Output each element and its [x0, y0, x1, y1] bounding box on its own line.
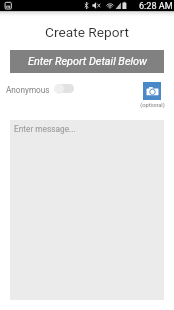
button[interactable]: Enter Report Detail Below [10, 50, 164, 73]
staticText: 6:28 AM [139, 1, 173, 12]
staticText: Anonymous [6, 85, 50, 95]
button[interactable]: Attach photo [143, 82, 161, 100]
staticText: Enter message... [14, 124, 76, 134]
staticText: (optional) [136, 102, 169, 109]
staticText: Enter Report Detail Below [28, 55, 147, 68]
button[interactable]: Enter message... [10, 120, 164, 300]
button[interactable]: Anonymous toggle, off [53, 82, 74, 95]
staticText: Create Report [0, 24, 174, 40]
